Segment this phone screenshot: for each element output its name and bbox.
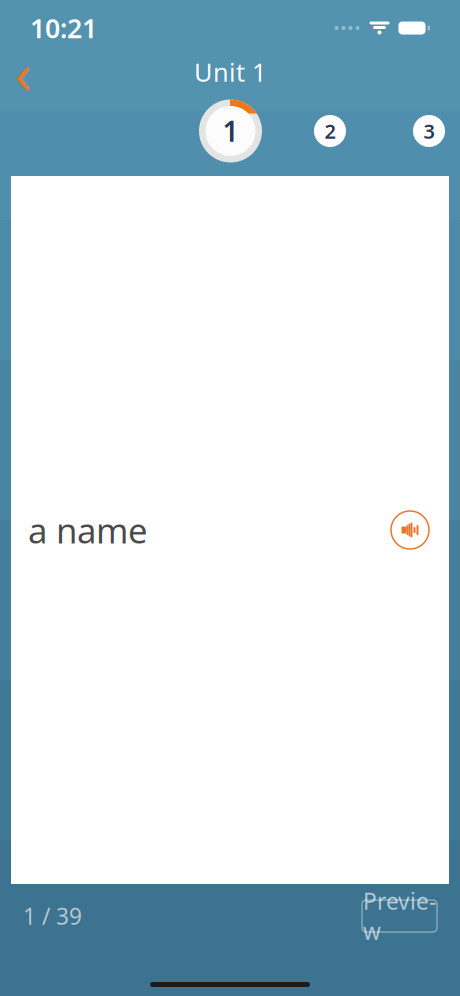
button[interactable]: 2 — [314, 115, 346, 147]
button[interactable]: Step 1, in progress — [199, 99, 262, 162]
button[interactable]: Preview — [362, 900, 437, 932]
button[interactable]: Play audio — [388, 508, 432, 552]
button[interactable]: 3 — [413, 115, 445, 147]
staticText: 1 — [222, 112, 238, 150]
staticText: 10:21 — [30, 10, 97, 46]
staticText: a name — [28, 507, 148, 553]
staticText: Unit 1 — [194, 55, 266, 89]
staticText: 2 — [324, 118, 335, 144]
staticText: 3 — [423, 118, 434, 144]
staticText: ‹ — [14, 35, 31, 109]
button[interactable]: Back — [0, 50, 46, 94]
staticText: 1 / 39 — [23, 901, 82, 931]
staticText: Preview — [363, 886, 436, 946]
